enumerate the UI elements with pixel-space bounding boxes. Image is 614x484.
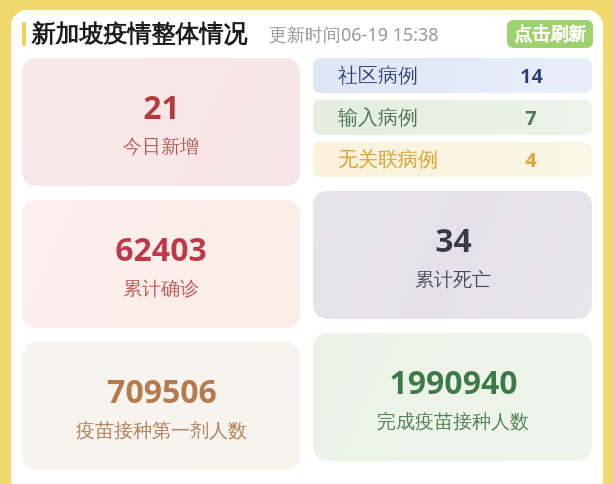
staticText: 点击刷新 <box>514 23 586 46</box>
staticText: 709506 <box>107 369 217 413</box>
staticText: 新加坡疫情整体情况 <box>31 19 247 49</box>
button[interactable]: 社区病例 <box>313 58 592 93</box>
staticText: 4 <box>525 146 537 173</box>
button[interactable]: 34 <box>313 191 592 319</box>
staticText: 1990940 <box>389 360 518 404</box>
staticText: 疫苗接种第一剂人数 <box>76 419 247 443</box>
staticText: 7 <box>525 104 537 131</box>
staticText: 21 <box>143 85 180 129</box>
staticText: 完成疫苗接种人数 <box>377 410 529 434</box>
staticText: 更新时间06-19 15:38 <box>269 22 439 47</box>
staticText: 社区病例 <box>338 63 418 88</box>
button[interactable]: 点击刷新 <box>507 20 593 48</box>
staticText: 62403 <box>115 227 207 271</box>
staticText: 无关联病例 <box>338 147 438 172</box>
button[interactable]: 1990940 <box>313 333 592 461</box>
staticText: 累计死亡 <box>415 268 491 292</box>
staticText: 34 <box>435 218 472 262</box>
staticText: 累计确诊 <box>123 277 199 301</box>
button[interactable]: 输入病例 <box>313 100 592 135</box>
button[interactable]: 无关联病例 <box>313 142 592 177</box>
button[interactable]: 62403 <box>22 200 300 328</box>
staticText: 输入病例 <box>338 105 418 130</box>
staticText: 今日新增 <box>123 135 199 159</box>
button[interactable]: 21 <box>22 58 300 186</box>
staticText: 14 <box>520 62 543 89</box>
button[interactable]: 709506 <box>22 342 300 470</box>
